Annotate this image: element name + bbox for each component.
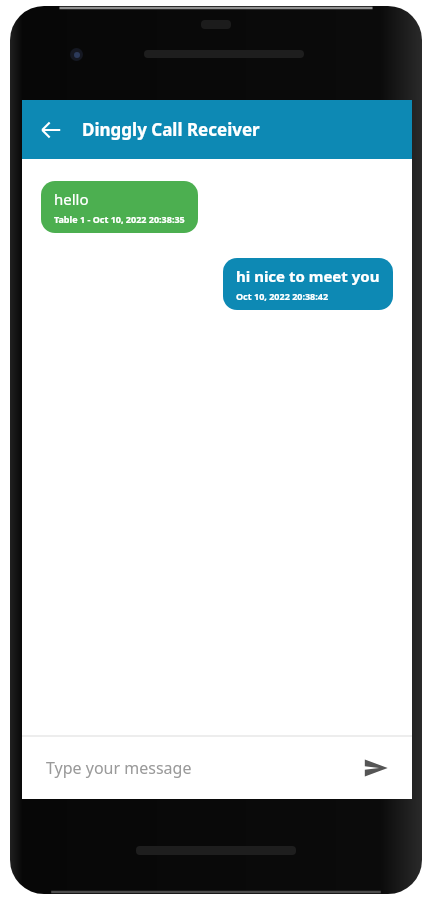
button[interactable]: hi nice to meet you xyxy=(223,258,393,310)
staticText: Oct 10, 2022 20:38:42 xyxy=(236,290,329,302)
staticText: hi nice to meet you xyxy=(236,266,380,286)
button[interactable]: Back xyxy=(30,109,72,151)
button[interactable]: Type your message xyxy=(22,757,354,779)
staticText: Table 1 - Oct 10, 2022 20:38:35 xyxy=(54,213,185,225)
button[interactable]: hello xyxy=(41,181,198,233)
button[interactable]: Send xyxy=(354,746,398,790)
staticText: Dinggly Call Receiver xyxy=(82,118,260,141)
staticText: hello xyxy=(54,189,89,209)
staticText: Type your message xyxy=(46,757,192,779)
